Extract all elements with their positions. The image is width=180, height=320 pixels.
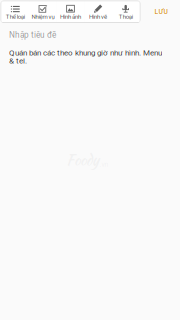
staticText: Nhập tiêu đề: [9, 30, 56, 40]
staticText: Thể loại: [6, 13, 25, 20]
button[interactable]: Hình ảnh: [57, 1, 84, 22]
staticText: Hình ảnh: [60, 13, 81, 20]
button[interactable]: Nhiệm vụ: [29, 1, 57, 22]
staticText: Quán bán các theo khung giờ như hình. Me…: [9, 48, 162, 57]
staticText: LƯU: [154, 8, 167, 16]
staticText: Thoại: [119, 13, 133, 20]
staticText: Nhiệm vụ: [31, 13, 54, 20]
button[interactable]: Thoại: [112, 1, 139, 22]
button[interactable]: Thể loại: [1, 1, 29, 22]
button[interactable]: LƯU: [143, 1, 179, 22]
staticText: Hình vẽ: [89, 13, 107, 20]
staticText: & tel.: [9, 56, 27, 65]
button[interactable]: Hình vẽ: [84, 1, 112, 22]
staticText: Foody: [66, 149, 99, 170]
